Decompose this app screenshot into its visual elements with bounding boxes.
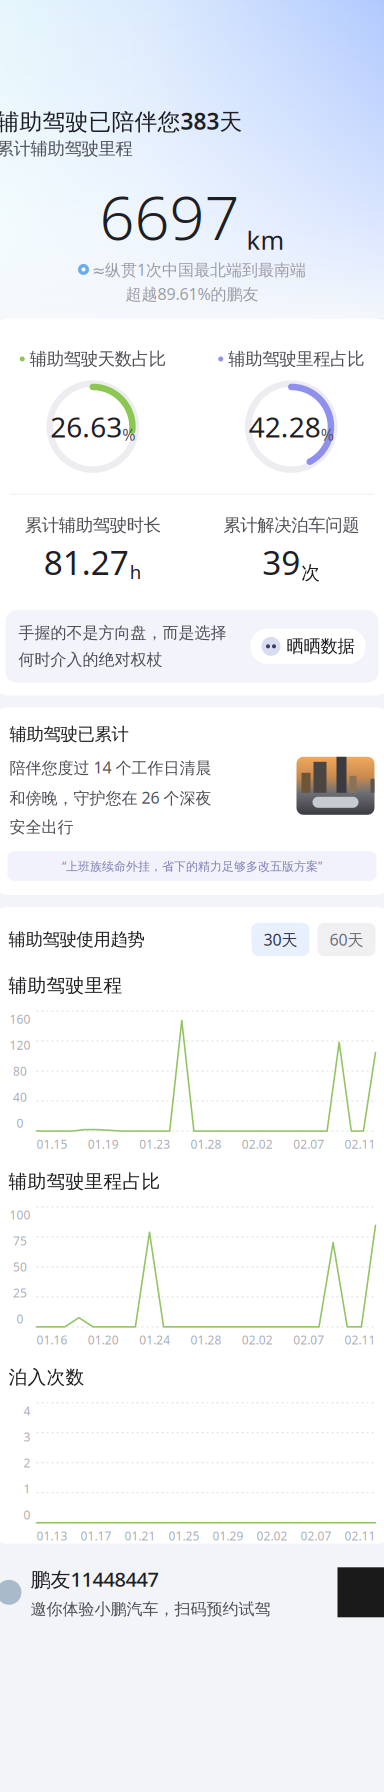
staticText: 辅助驾驶里程占比 <box>228 348 364 370</box>
staticText: 02.07 <box>300 1528 331 1544</box>
staticText: 01.29 <box>212 1528 243 1544</box>
staticText: 2 <box>23 1455 30 1471</box>
staticText: 安全出行 <box>9 817 73 837</box>
staticText: 160 <box>9 1011 30 1027</box>
staticText: km <box>246 223 284 257</box>
staticText: 辅助驾驶使用趋势 <box>8 929 144 950</box>
staticText: 辅助驾驶已陪伴您383天 <box>0 106 242 136</box>
staticText: 75 <box>13 1233 27 1249</box>
staticText: 何时介入的绝对权杖 <box>18 650 162 669</box>
button[interactable]: 30天 <box>251 923 309 956</box>
staticText: 02.07 <box>293 1332 324 1348</box>
staticText: 01.20 <box>88 1332 119 1348</box>
staticText: 6697 <box>99 175 239 257</box>
staticText: ≈纵贯1次中国最北端到最南端 <box>92 259 306 280</box>
staticText: 泊入次数 <box>8 1366 84 1389</box>
staticText: 鹏友11448447 <box>30 1566 158 1592</box>
staticText: 02.11 <box>344 1332 375 1348</box>
staticText: 辅助驾驶天数占比 <box>30 348 166 370</box>
staticText: 超越89.61%的鹏友 <box>125 283 258 304</box>
staticText: 60天 <box>329 929 363 950</box>
staticText: 26.63 <box>50 408 122 445</box>
staticText: 陪伴您度过 14 个工作日清晨 <box>9 757 211 778</box>
staticText: 80 <box>13 1063 27 1079</box>
staticText: 0 <box>23 1507 30 1523</box>
staticText: 50 <box>13 1259 27 1275</box>
staticText: 01.13 <box>36 1528 67 1544</box>
staticText: 辅助驾驶里程 <box>8 974 122 997</box>
staticText: 02.02 <box>242 1332 273 1348</box>
staticText: 40 <box>13 1089 27 1105</box>
staticText: “上班族续命外挂，省下的精力足够多改五版方案” <box>62 858 322 874</box>
button[interactable]: 晒晒数据 <box>250 629 365 664</box>
staticText: 01.16 <box>36 1332 67 1348</box>
staticText: 02.02 <box>256 1528 287 1544</box>
staticText: 01.21 <box>124 1528 155 1544</box>
staticText: 晒晒数据 <box>286 636 354 657</box>
staticText: 辅助驾驶里程占比 <box>8 1170 160 1193</box>
staticText: h <box>130 559 142 584</box>
staticText: 次 <box>301 561 320 584</box>
staticText: 39 <box>262 540 300 584</box>
staticText: 81.27 <box>44 540 129 584</box>
staticText: 02.02 <box>242 1136 273 1152</box>
staticText: 0 <box>16 1311 23 1327</box>
staticText: 01.28 <box>190 1136 221 1152</box>
staticText: 100 <box>9 1207 30 1223</box>
staticText: 0 <box>16 1115 23 1131</box>
staticText: 30天 <box>263 929 297 950</box>
staticText: 01.28 <box>190 1332 221 1348</box>
staticText: 和傍晚，守护您在 26 个深夜 <box>9 787 211 808</box>
staticText: 4 <box>23 1403 30 1419</box>
staticText: 02.07 <box>293 1136 324 1152</box>
staticText: 3 <box>23 1429 30 1445</box>
staticText: 邀你体验小鹏汽车，扫码预约试驾 <box>30 1599 270 1619</box>
staticText: 01.23 <box>139 1136 170 1152</box>
staticText: 累计辅助驾驶时长 <box>25 515 161 536</box>
staticText: 累计解决泊车问题 <box>223 515 359 536</box>
staticText: 辅助驾驶已累计 <box>9 723 128 745</box>
staticText: 02.11 <box>344 1528 375 1544</box>
staticText: 42.28 <box>249 408 321 445</box>
staticText: 01.15 <box>36 1136 67 1152</box>
staticText: % <box>321 424 334 445</box>
staticText: 01.17 <box>80 1528 111 1544</box>
button[interactable]: 60天 <box>317 923 375 956</box>
staticText: 01.19 <box>88 1136 119 1152</box>
staticText: 02.11 <box>344 1136 375 1152</box>
staticText: % <box>122 424 135 445</box>
staticText: 01.24 <box>139 1332 170 1348</box>
staticText: 累计辅助驾驶里程 <box>0 138 132 159</box>
staticText: 120 <box>9 1037 30 1053</box>
staticText: 01.25 <box>168 1528 199 1544</box>
staticText: 手握的不是方向盘，而是选择 <box>18 623 226 643</box>
staticText: 1 <box>23 1481 30 1497</box>
staticText: 25 <box>13 1285 27 1301</box>
